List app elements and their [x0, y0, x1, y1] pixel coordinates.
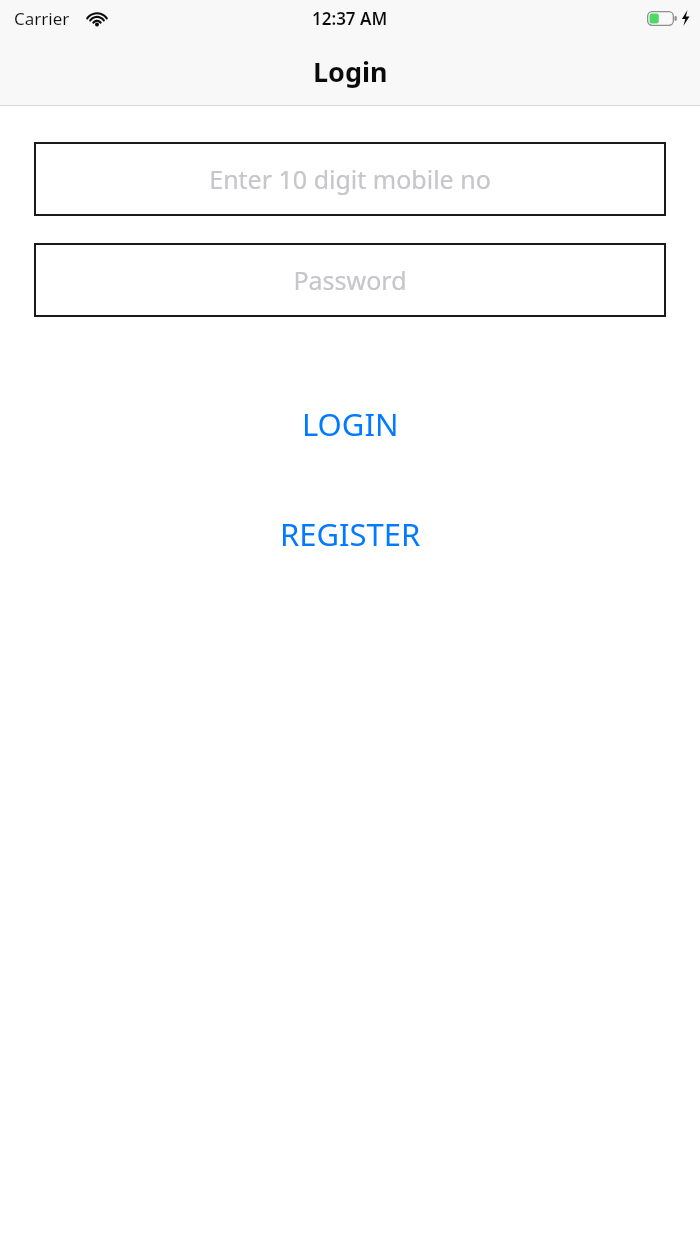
staticText: REGISTER: [280, 513, 421, 555]
button[interactable]: LOGIN: [0, 399, 700, 449]
button[interactable]: Password: [34, 243, 666, 317]
staticText: Enter 10 digit mobile no: [209, 162, 491, 196]
staticText: Carrier: [14, 7, 70, 30]
button[interactable]: REGISTER: [0, 509, 700, 559]
staticText: Password: [293, 263, 407, 297]
staticText: 12:37 AM: [312, 7, 388, 30]
staticText: Login: [313, 53, 388, 90]
button[interactable]: Enter 10 digit mobile no: [34, 142, 666, 216]
staticText: LOGIN: [302, 403, 399, 445]
